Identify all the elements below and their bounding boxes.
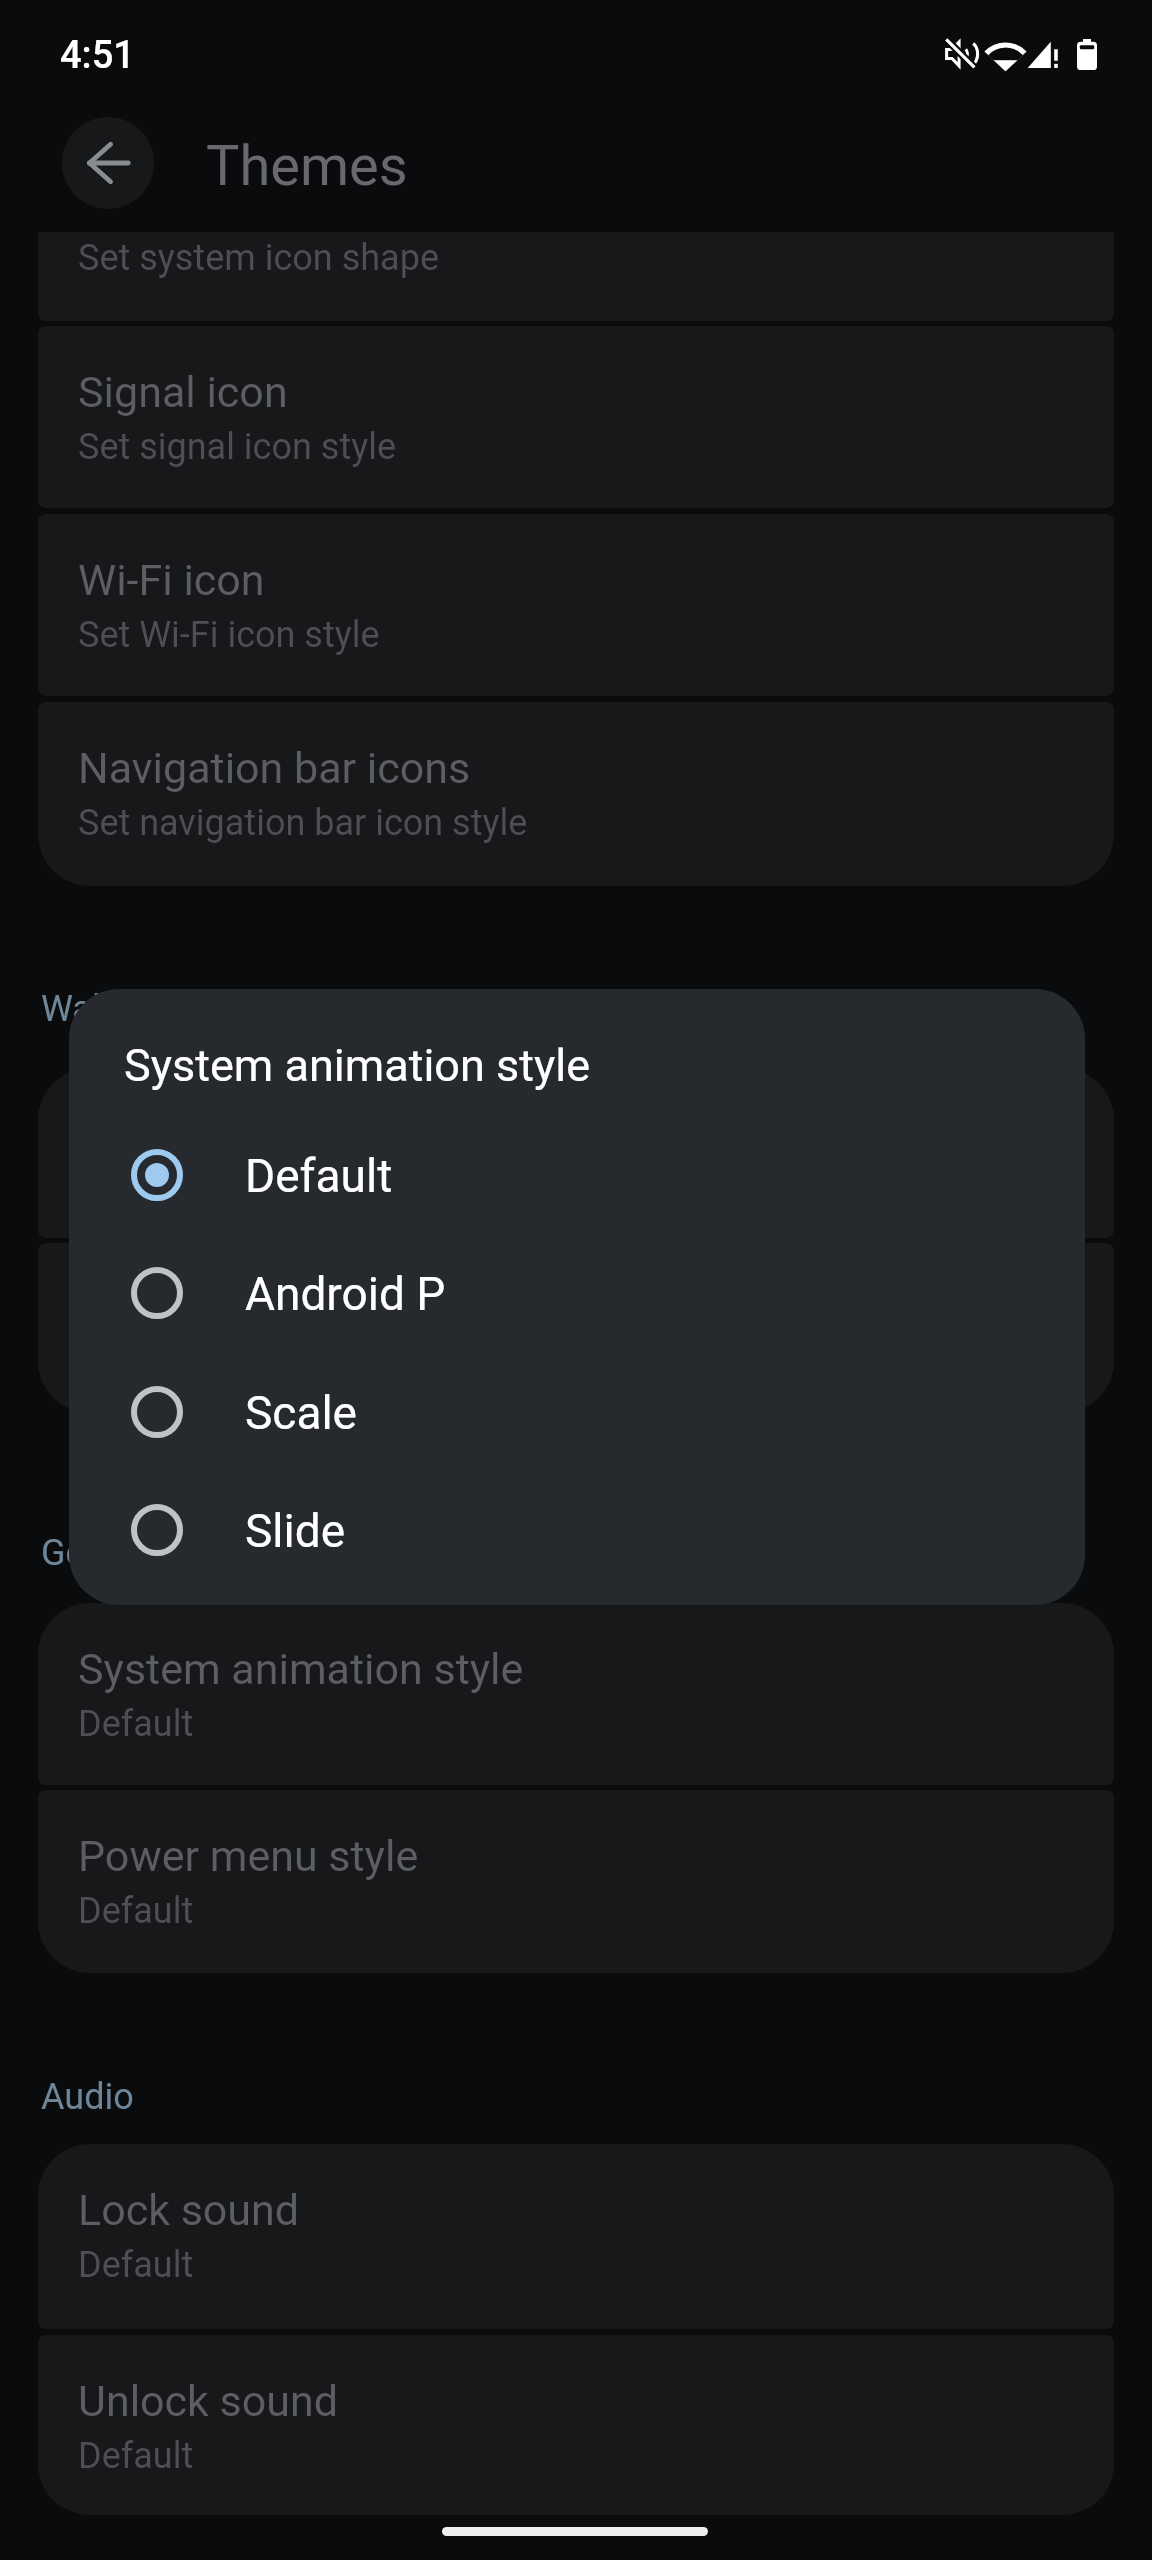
staticText: Set Wi-Fi icon style (78, 611, 380, 656)
staticText: Default (78, 2432, 194, 2477)
staticText: Set navigation bar icon style (78, 799, 528, 844)
button[interactable]: Signal icon (38, 326, 1114, 508)
staticText: Wallpaper dim (78, 1281, 352, 1335)
staticText: Default (78, 1700, 194, 1745)
button[interactable]: Wi-Fi icon (38, 514, 1114, 696)
staticText: Lock sound (78, 2182, 300, 2236)
staticText: Power menu style (78, 1828, 419, 1882)
button[interactable]: Scale (69, 1352, 1085, 1472)
staticText: Signal icon (78, 364, 288, 418)
staticText: Audio (41, 2073, 134, 2118)
button[interactable]: Power menu style (38, 1790, 1114, 1973)
staticText: Wallpaper (41, 985, 201, 1030)
staticText: Set system icon shape (78, 234, 439, 279)
staticText: Wallpaper (78, 1106, 269, 1160)
button[interactable]: Back (62, 117, 154, 209)
staticText: General (41, 1529, 164, 1574)
button[interactable]: Unlock sound (38, 2335, 1114, 2515)
button[interactable]: Wallpaper dim (38, 1243, 1114, 1413)
button[interactable]: System animation style (38, 1603, 1114, 1785)
staticText: Set signal icon style (78, 423, 397, 468)
staticText: Default (78, 1887, 194, 1932)
button[interactable]: Default (69, 1115, 1085, 1235)
staticText: Unlock sound (78, 2373, 338, 2427)
staticText: 4:51 (60, 30, 135, 78)
staticText: Slide (245, 1501, 346, 1559)
button[interactable]: Lock sound (38, 2144, 1114, 2329)
button[interactable]: Android P (69, 1233, 1085, 1353)
button[interactable]: Set system icon shape (38, 232, 1114, 321)
staticText: System animation style (124, 1036, 591, 1092)
staticText: Change wallpaper (78, 1165, 365, 1210)
staticText: Android P (245, 1264, 446, 1322)
staticText: Themes (206, 130, 408, 200)
button[interactable]: Slide (69, 1470, 1085, 1590)
button[interactable]: Navigation bar icons (38, 702, 1114, 886)
staticText: System animation style (78, 1641, 524, 1695)
button[interactable]: Wallpaper (38, 1068, 1114, 1238)
staticText: Default (245, 1146, 393, 1204)
staticText: Wi-Fi icon (78, 552, 265, 606)
staticText: Navigation bar icons (78, 740, 471, 794)
staticText: Scale (245, 1383, 357, 1441)
staticText: Default (78, 2241, 194, 2286)
